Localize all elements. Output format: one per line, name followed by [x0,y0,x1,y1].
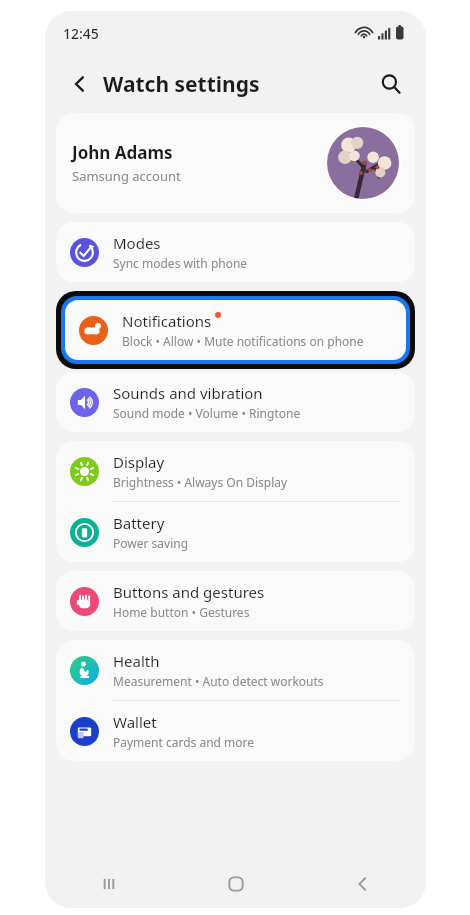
staticText: Home button • Gestures [113,604,250,620]
button[interactable]: Back [299,860,426,908]
staticText: 12:45 [63,24,99,43]
button[interactable]: Modes [56,222,415,282]
button[interactable]: Recents [45,860,172,908]
button[interactable]: Sounds and vibration [56,372,415,432]
staticText: Sound mode • Volume • Ringtone [113,405,301,421]
staticText: Watch settings [103,70,260,99]
staticText: Brightness • Always On Display [113,474,288,490]
staticText: Sounds and vibration [113,383,263,403]
staticText: Health [113,651,160,671]
button[interactable]: John Adams [56,113,415,213]
button[interactable]: Display [56,441,415,501]
button[interactable]: Home [172,860,299,908]
staticText: John Adams [72,141,173,164]
staticText: Wallet [113,712,157,732]
staticText: Power saving [113,535,189,551]
button[interactable]: Health [56,640,415,700]
staticText: Measurement • Auto detect workouts [113,673,324,689]
button[interactable]: Notifications [65,300,406,360]
staticText: Samsung account [72,167,181,185]
button[interactable]: Battery [56,502,415,562]
staticText: Modes [113,233,161,253]
button[interactable]: Back [63,67,97,101]
staticText: Buttons and gestures [113,582,265,602]
staticText: Block • Allow • Mute notifications on ph… [122,333,364,349]
button[interactable]: Search [374,67,408,101]
staticText: Payment cards and more [113,734,255,750]
button[interactable]: Wallet [56,701,415,761]
button[interactable]: Buttons and gestures [56,571,415,631]
staticText: Display [113,452,165,472]
staticText: Battery [113,513,165,533]
staticText: Notifications [122,311,212,331]
staticText: Sync modes with phone [113,255,248,271]
